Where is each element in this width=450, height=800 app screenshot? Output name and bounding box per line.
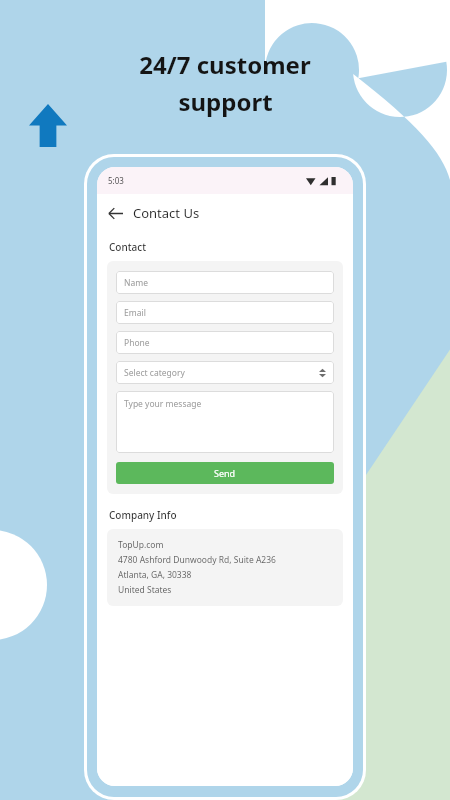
staticText: Send — [214, 467, 236, 479]
staticText: 24/7 customer — [139, 48, 311, 81]
button[interactable]: Select category — [116, 361, 334, 384]
staticText: Contact — [109, 240, 147, 254]
staticText: support — [178, 85, 273, 118]
staticText: TopUp.com — [118, 539, 164, 551]
staticText: 5:03 — [108, 175, 124, 186]
button[interactable]: Name — [116, 271, 334, 294]
button[interactable]: Phone — [116, 331, 334, 354]
staticText: Company Info — [109, 508, 177, 522]
staticText: Select category — [124, 367, 185, 379]
button[interactable]: Back — [97, 195, 133, 231]
staticText: Atlanta, GA, 30338 — [118, 569, 192, 581]
button[interactable]: Email — [116, 301, 334, 324]
staticText: Phone — [124, 337, 150, 349]
staticText: Contact Us — [133, 204, 200, 222]
staticText: 4780 Ashford Dunwoody Rd, Suite A236 — [118, 554, 276, 566]
staticText: Email — [124, 307, 146, 319]
staticText: United States — [118, 584, 172, 596]
staticText: Type your message — [124, 398, 202, 410]
button[interactable]: Send — [116, 462, 334, 484]
staticText: Name — [124, 277, 148, 289]
other: Upgrade — [29, 104, 67, 147]
button[interactable]: Type your message — [116, 391, 334, 453]
